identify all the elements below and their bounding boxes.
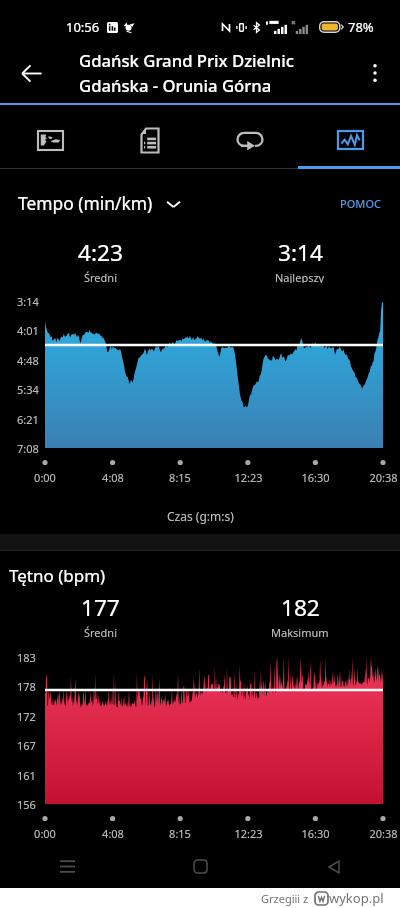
staticText: 78% [348,18,374,36]
button[interactable]: Recents [0,845,134,888]
staticText: 177 [81,592,120,623]
staticText: 7:08 [17,441,39,456]
staticText: 4:01 [17,323,39,338]
staticText: Tętno (bpm) [9,564,106,587]
button[interactable]: Details [100,103,200,169]
staticText: wykop.pl [329,889,384,907]
staticText: Grzegiii z [261,891,309,906]
button[interactable]: Back [267,845,400,888]
staticText: 20:38 [369,470,398,485]
staticText: 10:56 [66,18,100,36]
staticText: Najlepszy [275,270,325,283]
button[interactable]: Back [2,44,60,102]
staticText: 0:00 [34,470,56,485]
staticText: 183 [17,650,36,665]
staticText: 12:23 [234,470,263,485]
staticText: Gdańsk Grand Prix Dzielnic Gdańska - Oru… [79,49,294,97]
button[interactable]: Charts [300,103,400,169]
button[interactable]: More options [350,48,400,98]
staticText: 172 [17,709,36,724]
staticText: 4:08 [102,470,124,485]
staticText: 16:30 [301,826,330,841]
staticText: 167 [17,738,36,753]
staticText: 4:23 [78,237,123,268]
staticText: 178 [17,679,36,694]
staticText: 8:15 [169,470,191,485]
staticText: 4:08 [102,826,124,841]
staticText: 161 [17,768,36,783]
button[interactable]: Home [134,845,267,888]
staticText: 12:23 [234,826,263,841]
staticText: 3:14 [17,294,39,309]
staticText: POMOC [340,196,382,211]
staticText: Średni [84,270,117,283]
staticText: 5:34 [17,382,39,397]
staticText: 20:38 [369,826,398,841]
staticText: 16:30 [301,470,330,485]
button[interactable]: POMOC [336,192,386,215]
button[interactable]: Laps [200,103,300,169]
staticText: Tempo (min/km) [18,191,153,215]
staticText: 4:48 [17,353,39,368]
staticText: 8:15 [169,826,191,841]
staticText: 0:00 [34,826,56,841]
staticText: Średni [84,625,117,638]
button[interactable]: Tempo (min/km) [18,191,182,215]
staticText: 182 [281,592,320,623]
staticText: 3:14 [278,237,323,268]
button[interactable]: Map [0,103,100,169]
staticText: Maksimum [271,625,329,638]
staticText: 156 [17,797,36,812]
staticText: Czas (g:m:s) [167,508,234,524]
staticText: 6:21 [17,412,39,427]
